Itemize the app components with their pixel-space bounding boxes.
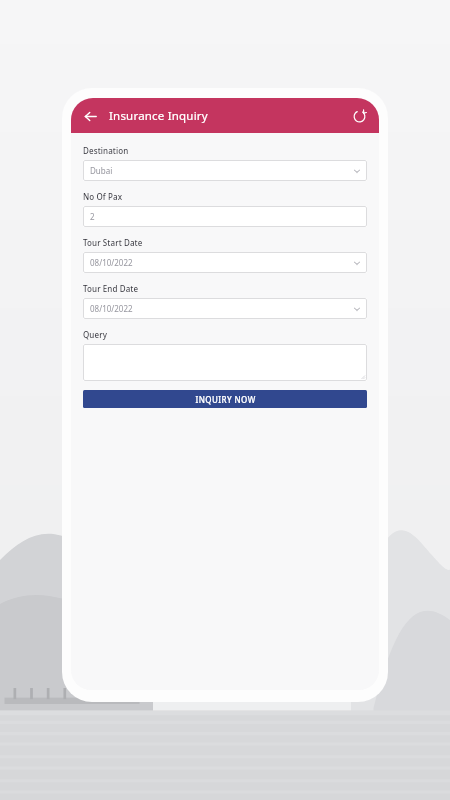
staticText: Tour End Date xyxy=(83,283,139,294)
button[interactable]: INQUIRY NOW xyxy=(83,390,367,408)
staticText: No Of Pax xyxy=(83,191,123,202)
button[interactable]: Dubai xyxy=(83,160,367,181)
button[interactable]: 08/10/2022 xyxy=(83,252,367,273)
button[interactable] xyxy=(83,344,367,381)
staticText: Insurance Inquiry xyxy=(109,108,208,124)
staticText: Dubai xyxy=(90,165,353,176)
button[interactable]: 08/10/2022 xyxy=(83,298,367,319)
button[interactable]: Back xyxy=(77,103,103,129)
staticText: 08/10/2022 xyxy=(90,303,353,314)
staticText: Query xyxy=(83,329,107,340)
staticText: Tour Start Date xyxy=(83,237,143,248)
staticText: INQUIRY NOW xyxy=(195,394,256,405)
staticText: 2 xyxy=(90,211,361,222)
button[interactable]: Refresh xyxy=(347,104,371,128)
staticText: Destination xyxy=(83,145,129,156)
button[interactable]: 2 xyxy=(83,206,367,227)
staticText: 08/10/2022 xyxy=(90,257,353,268)
